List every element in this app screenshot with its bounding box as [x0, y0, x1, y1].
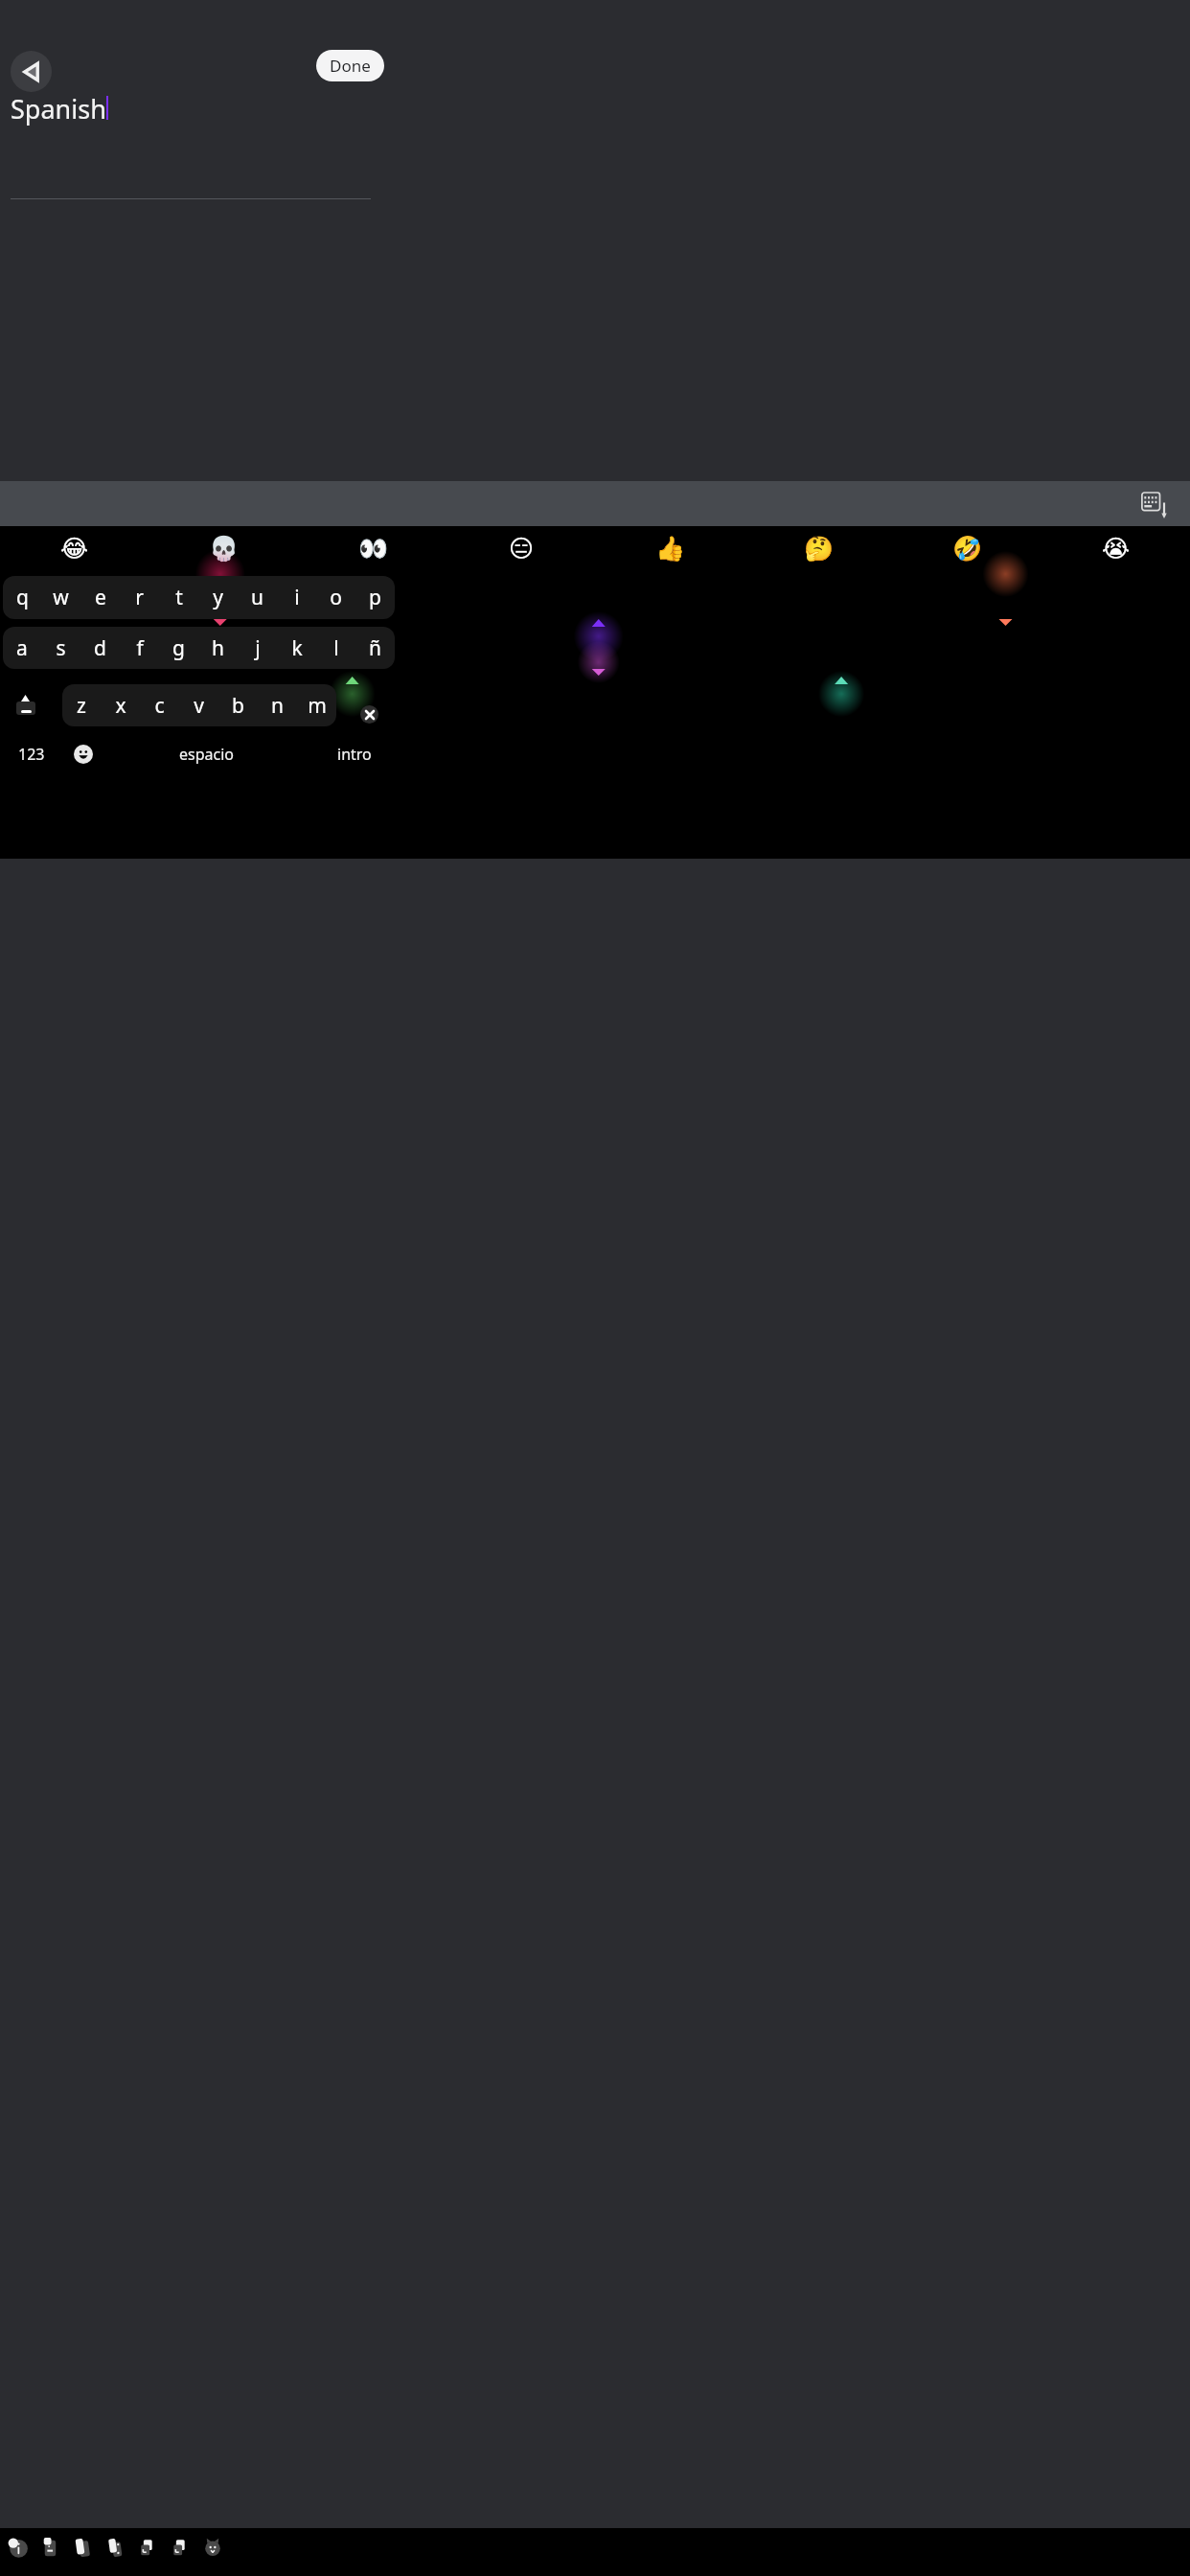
button[interactable]: 🤣 — [893, 528, 1041, 568]
button[interactable]: q — [3, 576, 41, 619]
staticText: y — [213, 584, 223, 611]
staticText: b — [232, 692, 244, 720]
staticText: m — [308, 692, 327, 720]
button[interactable]: Backspace — [360, 705, 378, 724]
staticText: g — [172, 634, 185, 662]
button[interactable]: 😑 — [447, 528, 596, 568]
button[interactable]: Back — [11, 51, 52, 92]
button[interactable]: Recent app 4 — [103, 2534, 129, 2561]
staticText: x — [115, 692, 126, 720]
button[interactable]: Hide keyboard — [1134, 483, 1177, 525]
button[interactable]: Emoji — [59, 735, 107, 773]
button[interactable]: i — [277, 576, 316, 619]
button[interactable]: m — [297, 684, 336, 726]
button[interactable]: intro — [316, 735, 393, 773]
staticText: j — [255, 634, 261, 662]
button[interactable]: a — [3, 627, 41, 669]
button[interactable]: Done — [316, 50, 384, 81]
button[interactable]: Recent app 6 — [167, 2534, 194, 2561]
button[interactable]: f — [120, 627, 159, 669]
staticText: q — [16, 584, 29, 611]
button[interactable]: Recent app 3 — [70, 2534, 97, 2561]
staticText: u — [251, 584, 263, 611]
staticText: 😑 — [509, 535, 535, 563]
button[interactable]: 😂 — [0, 528, 149, 568]
staticText: e — [95, 584, 106, 611]
staticText: z — [77, 692, 86, 720]
button[interactable]: p — [355, 576, 395, 619]
button[interactable]: h — [198, 627, 238, 669]
staticText: 😂 — [60, 535, 89, 563]
button[interactable]: 🤔 — [744, 528, 893, 568]
button[interactable]: z — [62, 684, 101, 726]
button[interactable]: 💀 — [149, 528, 299, 568]
button[interactable]: x — [101, 684, 140, 726]
button[interactable]: Recent app 2 — [37, 2534, 64, 2561]
staticText: d — [94, 634, 106, 662]
staticText: o — [330, 584, 342, 611]
staticText: 123 — [18, 744, 45, 765]
button[interactable]: r — [120, 576, 159, 619]
button[interactable]: t — [159, 576, 198, 619]
staticText: k — [291, 634, 303, 662]
staticText: Done — [330, 55, 371, 77]
button[interactable]: w — [41, 576, 80, 619]
button[interactable]: Shift — [16, 701, 35, 715]
button[interactable]: e — [80, 576, 120, 619]
staticText: n — [271, 692, 284, 720]
staticText: espacio — [179, 744, 234, 765]
staticText: 🤔 — [804, 535, 835, 563]
staticText: ñ — [369, 634, 381, 662]
button[interactable]: v — [179, 684, 218, 726]
button[interactable]: s — [41, 627, 80, 669]
button[interactable]: j — [238, 627, 277, 669]
button[interactable]: b — [218, 684, 258, 726]
button[interactable]: u — [238, 576, 277, 619]
button[interactable]: c — [140, 684, 179, 726]
staticText: w — [53, 584, 69, 611]
staticText: c — [154, 692, 165, 720]
button[interactable]: Recent app 5 — [134, 2534, 161, 2561]
staticText: l — [333, 634, 339, 662]
button[interactable]: Recent app 1 — [5, 2534, 32, 2561]
button[interactable]: 👀 — [299, 528, 447, 568]
staticText: Spanish — [11, 91, 106, 126]
staticText: 😭 — [1102, 535, 1131, 563]
staticText: intro — [337, 744, 372, 765]
staticText: a — [16, 634, 28, 662]
staticText: 🤣 — [952, 535, 983, 563]
button[interactable]: l — [316, 627, 355, 669]
button[interactable]: g — [159, 627, 198, 669]
button[interactable]: y — [198, 576, 238, 619]
button[interactable]: 👍 — [596, 528, 744, 568]
button[interactable]: 😭 — [1041, 528, 1190, 568]
staticText: h — [212, 634, 224, 662]
staticText: r — [135, 584, 144, 611]
staticText: t — [175, 584, 183, 611]
staticText: s — [56, 634, 66, 662]
button[interactable]: 123 — [8, 735, 56, 773]
button[interactable]: espacio — [144, 735, 268, 773]
button[interactable]: ñ — [355, 627, 395, 669]
button[interactable]: n — [258, 684, 297, 726]
staticText: 💀 — [209, 535, 240, 563]
button[interactable]: k — [277, 627, 316, 669]
staticText: i — [294, 584, 300, 611]
staticText: p — [369, 584, 381, 611]
staticText: 👀 — [358, 535, 389, 563]
staticText: f — [136, 634, 144, 662]
button[interactable]: Recent app 7 — [199, 2534, 226, 2561]
button[interactable]: d — [80, 627, 120, 669]
staticText: 👍 — [655, 535, 686, 563]
staticText: v — [194, 692, 204, 720]
button[interactable]: o — [316, 576, 355, 619]
